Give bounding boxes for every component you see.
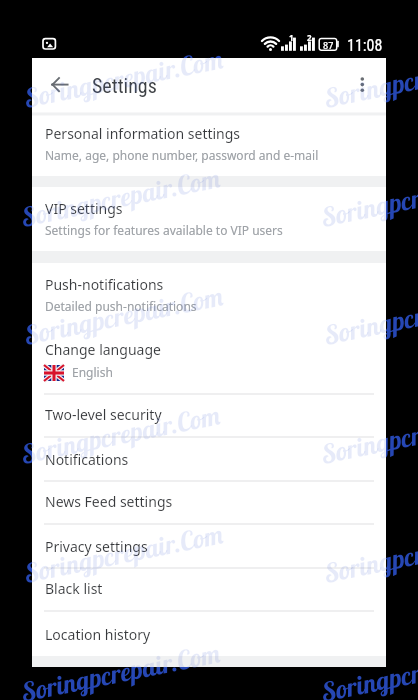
button[interactable]: Black list	[32, 567, 386, 610]
staticText: Detailed push-notifications	[45, 298, 197, 314]
staticText: VIP settings	[45, 199, 123, 218]
staticText: Push-notifications	[45, 275, 164, 294]
staticText: Soringpcrepair.Com	[319, 161, 418, 234]
staticText: Privacy settings	[45, 537, 148, 556]
button[interactable]: Location history	[32, 611, 386, 657]
staticText: Soringpcrepair.Com	[319, 636, 418, 700]
staticText: Soringpcrepair.Com	[32, 279, 227, 352]
staticText: 2	[307, 32, 312, 43]
staticText: Soringpcrepair.Com	[19, 398, 224, 471]
staticText: Soringpcrepair.Com	[319, 636, 386, 667]
button[interactable]: Notifications	[32, 437, 386, 481]
staticText: Soringpcrepair.Com	[319, 398, 386, 471]
staticText: Notifications	[45, 450, 129, 469]
button[interactable]: Two-level security	[32, 393, 386, 436]
staticText: Soringpcrepair.Com	[32, 398, 224, 471]
staticText: English	[72, 364, 113, 380]
staticText: Settings	[92, 74, 157, 97]
button[interactable]	[32, 326, 386, 393]
staticText: Soringpcrepair.Com	[32, 161, 224, 234]
staticText: 87	[323, 39, 334, 51]
staticText: Black list	[45, 579, 103, 598]
staticText: Two-level security	[45, 405, 162, 424]
staticText: Soringpcrepair.Com	[322, 517, 418, 590]
staticText: Soringpcrepair.Com	[322, 279, 418, 352]
staticText: Soringpcrepair.Com	[322, 58, 386, 115]
button[interactable]: Privacy settings	[32, 524, 386, 568]
staticText: Soringpcrepair.Com	[22, 279, 227, 352]
staticText: Soringpcrepair.Com	[32, 58, 227, 115]
staticText: 1	[289, 32, 294, 43]
staticText: Soringpcrepair.Com	[32, 517, 227, 590]
staticText: Soringpcrepair.Com	[322, 279, 386, 352]
button[interactable]: Back	[39, 64, 81, 106]
staticText: Soringpcrepair.Com	[22, 42, 227, 115]
staticText: Soringpcrepair.Com	[322, 517, 386, 590]
staticText: Name, age, phone number, password and e-…	[45, 147, 319, 163]
button[interactable]	[32, 263, 386, 327]
button[interactable]	[32, 187, 386, 251]
staticText: Soringpcrepair.Com	[19, 636, 224, 700]
staticText: Soringpcrepair.Com	[22, 517, 227, 590]
staticText: Personal information settings	[45, 124, 241, 143]
staticText: Soringpcrepair.Com	[319, 398, 418, 471]
staticText: Soringpcrepair.Com	[32, 636, 224, 667]
staticText: Soringpcrepair.Com	[322, 42, 418, 115]
button[interactable]: News Feed settings	[32, 480, 386, 523]
staticText: Location history	[45, 625, 151, 644]
staticText: Settings for features available to VIP u…	[45, 222, 283, 238]
staticText: 11:08	[347, 36, 383, 55]
staticText: Soringpcrepair.Com	[19, 161, 224, 234]
staticText: News Feed settings	[45, 492, 173, 511]
staticText: Soringpcrepair.Com	[319, 161, 386, 234]
button[interactable]	[32, 114, 386, 176]
staticText: Change language	[45, 340, 161, 359]
button[interactable]: More options	[341, 64, 383, 106]
